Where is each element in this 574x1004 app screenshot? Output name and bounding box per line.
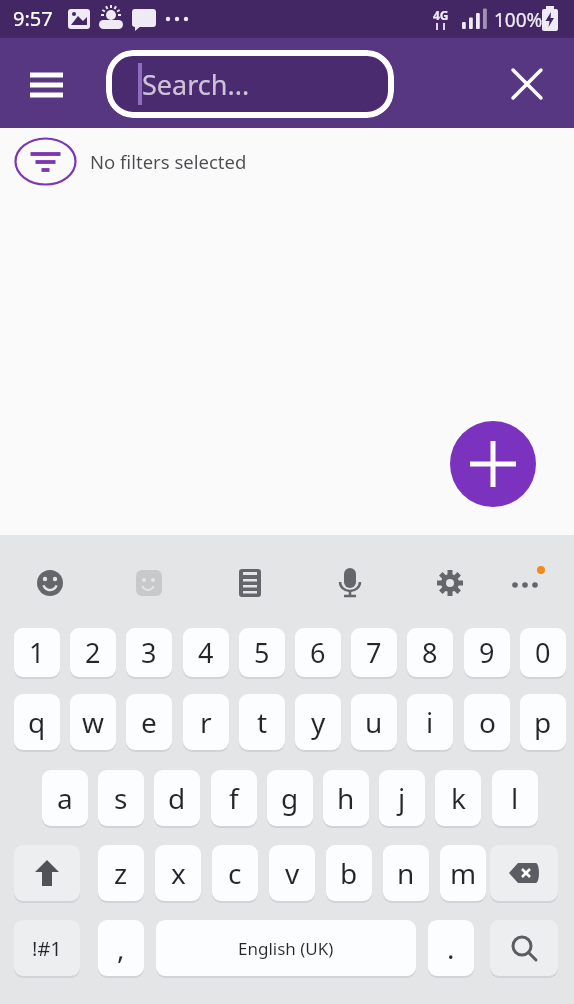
- button[interactable]: ,: [98, 920, 144, 976]
- staticText: 7: [366, 634, 382, 671]
- staticText: ,: [117, 929, 125, 967]
- staticText: m: [450, 854, 477, 892]
- button[interactable]: m: [440, 845, 486, 901]
- button[interactable]: k: [435, 770, 481, 826]
- button[interactable]: Search...: [106, 50, 394, 118]
- button[interactable]: 6: [295, 628, 341, 677]
- button[interactable]: j: [379, 770, 425, 826]
- button[interactable]: u: [351, 694, 397, 750]
- button[interactable]: 3: [126, 628, 172, 677]
- button[interactable]: r: [183, 694, 229, 750]
- staticText: v: [285, 854, 300, 892]
- button[interactable]: b: [326, 845, 372, 901]
- staticText: r: [200, 703, 212, 741]
- button[interactable]: 8: [407, 628, 453, 677]
- button[interactable]: 9: [464, 628, 510, 677]
- staticText: 9: [479, 634, 495, 671]
- button[interactable]: s: [98, 770, 144, 826]
- staticText: 9:57: [13, 5, 53, 32]
- staticText: Search...: [142, 66, 250, 103]
- staticText: p: [534, 703, 552, 741]
- staticText: 3: [141, 634, 157, 671]
- button[interactable]: 5: [239, 628, 285, 677]
- staticText: b: [340, 854, 358, 892]
- staticText: y: [311, 703, 326, 741]
- staticText: x: [171, 854, 186, 892]
- button[interactable]: [14, 845, 80, 901]
- button[interactable]: o: [464, 694, 510, 750]
- button[interactable]: e: [126, 694, 172, 750]
- button[interactable]: [14, 137, 77, 186]
- staticText: 8: [422, 634, 438, 671]
- staticText: a: [57, 779, 73, 817]
- button[interactable]: l: [492, 770, 538, 826]
- staticText: .: [447, 929, 455, 967]
- staticText: g: [281, 779, 299, 817]
- button[interactable]: f: [211, 770, 257, 826]
- button[interactable]: 0: [520, 628, 566, 677]
- button[interactable]: q: [14, 694, 60, 750]
- button[interactable]: English (UK): [156, 920, 416, 976]
- staticText: No filters selected: [90, 149, 247, 174]
- staticText: h: [337, 779, 355, 817]
- button[interactable]: [450, 421, 536, 507]
- button[interactable]: t: [239, 694, 285, 750]
- button[interactable]: h: [323, 770, 369, 826]
- staticText: 4G: [433, 7, 449, 23]
- button[interactable]: n: [383, 845, 429, 901]
- staticText: o: [479, 703, 496, 741]
- button[interactable]: [18, 65, 74, 105]
- staticText: d: [168, 779, 186, 817]
- staticText: f: [229, 779, 239, 817]
- staticText: e: [141, 703, 157, 741]
- button[interactable]: [490, 920, 558, 976]
- button[interactable]: p: [520, 694, 566, 750]
- button[interactable]: v: [269, 845, 315, 901]
- button[interactable]: w: [70, 694, 116, 750]
- staticText: 5: [254, 634, 270, 671]
- staticText: 1: [29, 634, 45, 671]
- staticText: 6: [310, 634, 326, 671]
- staticText: t: [257, 703, 268, 741]
- button[interactable]: [490, 845, 558, 901]
- button[interactable]: a: [42, 770, 88, 826]
- button[interactable]: d: [154, 770, 200, 826]
- staticText: j: [398, 779, 406, 817]
- staticText: English (UK): [238, 937, 334, 960]
- button[interactable]: 4: [183, 628, 229, 677]
- button[interactable]: 7: [351, 628, 397, 677]
- staticText: !#1: [32, 935, 62, 962]
- button[interactable]: i: [407, 694, 453, 750]
- button[interactable]: g: [267, 770, 313, 826]
- staticText: i: [426, 703, 434, 741]
- button[interactable]: 1: [14, 628, 60, 677]
- staticText: 4: [198, 634, 214, 671]
- button[interactable]: c: [212, 845, 258, 901]
- staticText: 2: [85, 634, 101, 671]
- staticText: s: [114, 779, 128, 817]
- button[interactable]: y: [295, 694, 341, 750]
- button[interactable]: z: [98, 845, 144, 901]
- button[interactable]: .: [428, 920, 474, 976]
- staticText: c: [228, 854, 242, 892]
- staticText: 100%: [494, 7, 543, 33]
- staticText: q: [28, 703, 46, 741]
- staticText: u: [365, 703, 383, 741]
- button[interactable]: [503, 60, 551, 108]
- staticText: k: [451, 779, 466, 817]
- button[interactable]: x: [155, 845, 201, 901]
- staticText: 0: [535, 634, 551, 671]
- staticText: w: [82, 703, 105, 741]
- button[interactable]: !#1: [14, 920, 80, 976]
- staticText: n: [397, 854, 415, 892]
- button[interactable]: 2: [70, 628, 116, 677]
- staticText: z: [114, 854, 128, 892]
- staticText: l: [511, 779, 519, 817]
